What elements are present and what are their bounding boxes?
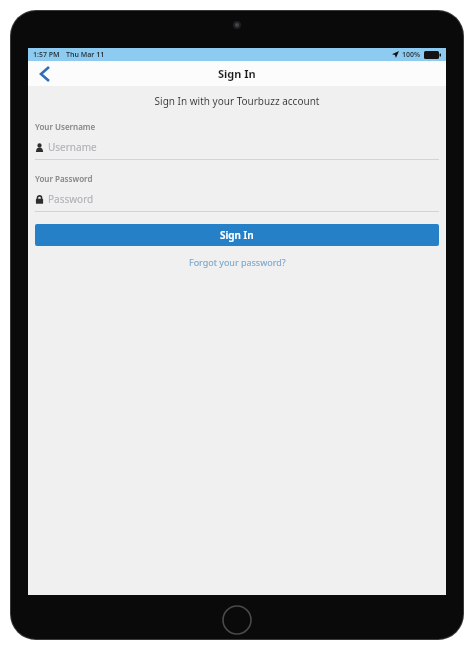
button[interactable]: Back [28,61,62,86]
staticText: 1:57 PM [33,50,60,60]
staticText: Your Username [35,121,96,132]
staticText: Sign In with your Tourbuzz account [28,94,446,108]
staticText: Sign In [218,66,256,81]
staticText: Your Password [35,173,93,184]
button[interactable]: Username [35,140,439,154]
button[interactable]: Forgot your password? [183,254,292,270]
staticText: Username [48,140,97,154]
staticText: Password [48,192,94,206]
staticText: 100% [402,50,421,60]
staticText: Forgot your password? [189,256,286,268]
staticText: Thu Mar 11 [66,50,105,60]
staticText: Sign In [220,228,254,242]
button[interactable]: Sign In [35,224,439,246]
button[interactable]: Password [35,192,439,206]
